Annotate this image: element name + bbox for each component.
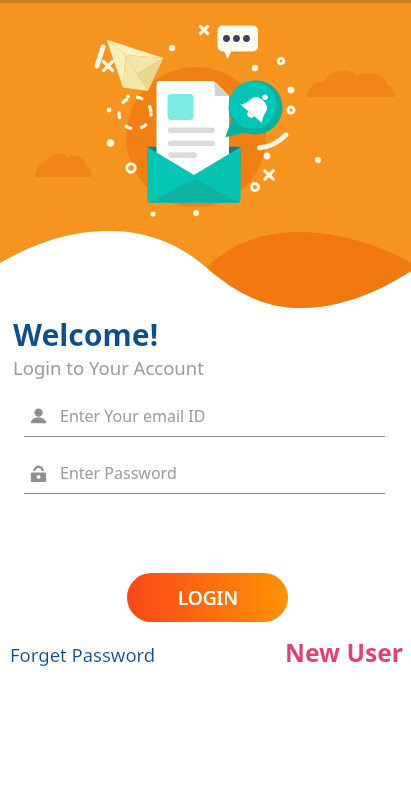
- staticText: LOGIN: [178, 585, 238, 611]
- button[interactable]: Enter Password: [24, 462, 385, 494]
- staticText: Forget Password: [10, 642, 156, 667]
- button[interactable]: LOGIN: [127, 573, 288, 622]
- staticText: New User: [285, 636, 403, 669]
- button[interactable]: Enter Your email ID: [24, 405, 385, 437]
- button[interactable]: New User: [285, 636, 403, 669]
- button[interactable]: Forget Password: [10, 642, 156, 667]
- staticText: Enter Password: [60, 462, 177, 484]
- staticText: Login to Your Account: [13, 355, 204, 380]
- staticText: Welcome!: [13, 314, 159, 355]
- staticText: Enter Your email ID: [60, 405, 206, 427]
